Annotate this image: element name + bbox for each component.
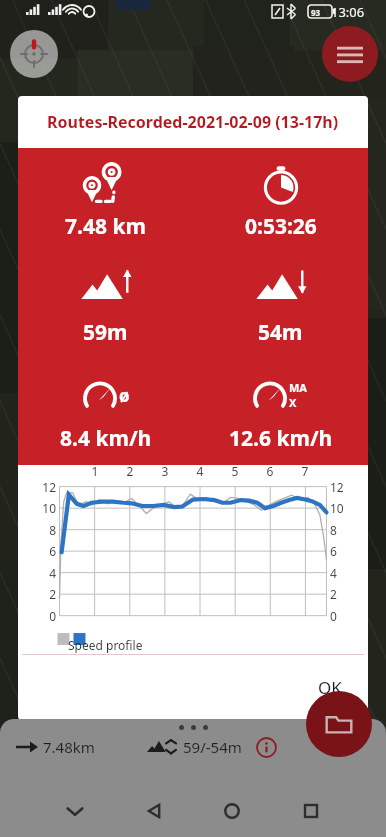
staticText: Routes-Recorded-2021-02-09 (13-17h) xyxy=(47,111,339,133)
staticText: 5 xyxy=(225,463,245,479)
staticText: 3 xyxy=(155,463,175,479)
staticText: 7 xyxy=(295,463,315,479)
staticText: 0 xyxy=(330,608,356,624)
staticText: 2 xyxy=(120,463,140,479)
button[interactable]: Back xyxy=(132,789,176,833)
staticText: 10 xyxy=(330,500,356,516)
button[interactable]: OK xyxy=(302,666,358,709)
button[interactable]: Center on location xyxy=(10,30,58,78)
staticText: MAX xyxy=(289,380,309,410)
button[interactable]: 7.48km xyxy=(12,733,99,761)
staticText: 54m xyxy=(258,318,303,347)
staticText: 2 xyxy=(330,586,356,602)
staticText: ø xyxy=(119,384,130,407)
staticText: 6 xyxy=(30,543,56,559)
staticText: OK xyxy=(318,676,342,699)
staticText: 12 xyxy=(30,479,56,495)
staticText: 59/-54m xyxy=(183,737,242,757)
staticText: 12 xyxy=(330,479,356,495)
staticText: 12.6 km/h xyxy=(229,424,333,453)
staticText: 0 xyxy=(30,608,56,624)
button[interactable]: Menu xyxy=(322,26,378,82)
staticText: Speed profile xyxy=(68,637,143,653)
staticText: 7.48 km xyxy=(65,212,146,241)
staticText: 1 xyxy=(85,463,105,479)
staticText: 10 xyxy=(30,500,56,516)
staticText: 8 xyxy=(330,522,356,538)
staticText: 0:53:26 xyxy=(245,212,317,241)
button[interactable]: 59/-54m xyxy=(143,733,246,761)
button[interactable]: Home xyxy=(210,789,254,833)
staticText: 4 xyxy=(190,463,210,479)
button[interactable]: Recents xyxy=(289,789,333,833)
button[interactable]: Hide keyboard xyxy=(53,789,97,833)
staticText: 4 xyxy=(330,565,356,581)
staticText: 93 xyxy=(311,7,321,18)
staticText: 6 xyxy=(260,463,280,479)
staticText: 8.4 km/h xyxy=(60,424,152,453)
staticText: 59m xyxy=(83,318,128,347)
staticText: 2 xyxy=(30,586,56,602)
staticText: 7.48km xyxy=(43,737,95,757)
staticText: 6 xyxy=(330,543,356,559)
staticText: 13:06 xyxy=(331,3,365,21)
staticText: 4 xyxy=(30,565,56,581)
button[interactable]: Info xyxy=(254,735,278,759)
staticText: 8 xyxy=(30,522,56,538)
button[interactable]: Open folder xyxy=(306,691,372,757)
